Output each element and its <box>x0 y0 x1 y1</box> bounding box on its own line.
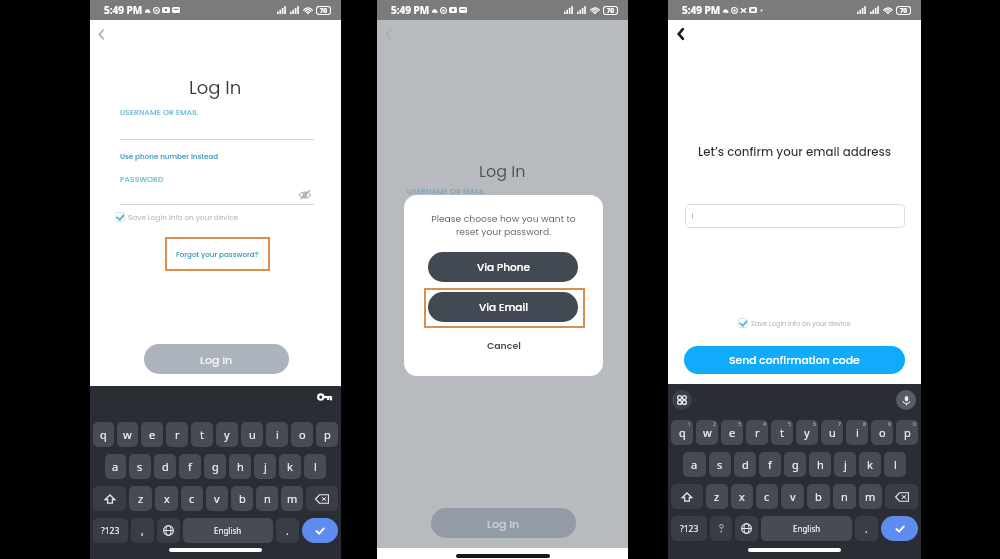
button[interactable]: Backspace <box>885 484 918 509</box>
button[interactable]: i <box>266 422 288 447</box>
staticText: e <box>149 427 156 442</box>
staticText: y <box>804 425 810 440</box>
button[interactable]: v <box>206 486 228 511</box>
button[interactable]: j <box>834 452 856 477</box>
button[interactable]: ?123 <box>671 516 707 541</box>
staticText: a <box>112 459 119 474</box>
button[interactable]: Password manager <box>318 393 332 407</box>
button[interactable]: Via Phone <box>428 252 578 282</box>
staticText: g <box>212 459 219 474</box>
button[interactable]: f <box>759 452 781 477</box>
button[interactable]: Emoji <box>672 390 692 410</box>
button[interactable]: j <box>254 454 276 479</box>
button[interactable]: c <box>181 486 203 511</box>
button[interactable]: l <box>304 454 326 479</box>
button[interactable]: Shift <box>671 484 703 509</box>
button[interactable]: Backspace <box>306 486 338 511</box>
staticText: f <box>768 457 772 472</box>
button[interactable]: Back <box>673 26 689 42</box>
button[interactable]: e <box>721 420 743 445</box>
button[interactable]: b <box>807 484 830 509</box>
button[interactable]: English <box>183 518 273 543</box>
button[interactable]: w <box>117 422 138 447</box>
button[interactable]: k <box>859 452 881 477</box>
button[interactable]: Send confirmation code <box>684 346 905 374</box>
button[interactable]: s <box>709 452 731 477</box>
button[interactable]: Enter <box>881 516 918 541</box>
staticText: q <box>679 425 686 440</box>
button[interactable]: z <box>706 484 728 509</box>
button[interactable]: c <box>756 484 778 509</box>
button[interactable]: Back <box>94 27 109 42</box>
button[interactable]: ?123 <box>93 518 128 543</box>
button[interactable]: r <box>746 420 768 445</box>
staticText: PASSWORD <box>120 174 164 185</box>
staticText: 0 <box>913 421 916 428</box>
button[interactable]: d <box>154 454 176 479</box>
button[interactable]: Change language <box>157 518 180 543</box>
button[interactable]: Back <box>381 27 396 42</box>
button[interactable]: f <box>179 454 201 479</box>
button[interactable]: z <box>129 486 152 511</box>
button[interactable]: q <box>671 420 693 445</box>
button[interactable]: h <box>809 452 831 477</box>
button[interactable]: d <box>734 452 756 477</box>
button[interactable]: i <box>846 420 868 445</box>
button[interactable]: Change language <box>735 516 758 541</box>
button[interactable]: p <box>896 420 918 445</box>
button[interactable]: p <box>316 422 338 447</box>
staticText: English <box>214 525 242 536</box>
button[interactable]: Save Login Info on your device <box>737 317 852 329</box>
button[interactable]: Save Login Info on your device <box>114 211 240 223</box>
button[interactable]: s <box>129 454 151 479</box>
button[interactable]: u <box>821 420 843 445</box>
button[interactable]: , <box>131 518 154 543</box>
staticText: j <box>844 457 847 472</box>
button[interactable]: Log In <box>144 344 289 374</box>
button[interactable]: t <box>191 422 213 447</box>
button[interactable]: l <box>884 452 906 477</box>
button[interactable]: v <box>781 484 804 509</box>
button[interactable]: b <box>231 486 253 511</box>
button[interactable]: English <box>761 516 852 541</box>
staticText: v <box>214 491 220 506</box>
button[interactable]: o <box>871 420 893 445</box>
button[interactable] <box>710 516 732 541</box>
button[interactable]: g <box>784 452 806 477</box>
button[interactable]: Via Email <box>428 292 578 322</box>
button[interactable]: h <box>229 454 251 479</box>
button[interactable]: e <box>141 422 163 447</box>
button[interactable]: Use phone number instead <box>120 151 219 161</box>
button[interactable]: Enter <box>302 518 338 543</box>
button[interactable]: Forgot your password? <box>165 237 270 271</box>
staticText: Save Login Info on your device <box>128 212 239 222</box>
button[interactable]: a <box>683 452 706 477</box>
button[interactable]: x <box>731 484 753 509</box>
button[interactable]: r <box>166 422 188 447</box>
button[interactable]: m <box>859 484 882 509</box>
button[interactable]: u <box>241 422 263 447</box>
button[interactable]: Shift <box>93 486 126 511</box>
button[interactable]: Show password <box>298 188 312 202</box>
button[interactable]: y <box>796 420 818 445</box>
button[interactable]: n <box>833 484 856 509</box>
button[interactable]: g <box>204 454 226 479</box>
button[interactable]: w <box>696 420 718 445</box>
button[interactable]: Cancel <box>479 337 529 354</box>
button[interactable]: y <box>216 422 238 447</box>
button[interactable]: Voice input <box>896 390 916 410</box>
button[interactable]: k <box>279 454 301 479</box>
button[interactable]: x <box>155 486 178 511</box>
button[interactable]: n <box>256 486 278 511</box>
button[interactable]: q <box>93 422 114 447</box>
button[interactable]: a <box>105 454 126 479</box>
button[interactable]: . <box>855 516 878 541</box>
button[interactable]: Log In <box>431 508 576 538</box>
button[interactable]: t <box>771 420 793 445</box>
button[interactable]: o <box>291 422 313 447</box>
button[interactable] <box>685 204 905 228</box>
staticText: Log In <box>479 160 526 182</box>
button[interactable]: m <box>281 486 303 511</box>
button[interactable]: . <box>276 518 299 543</box>
staticText: x <box>164 491 170 506</box>
